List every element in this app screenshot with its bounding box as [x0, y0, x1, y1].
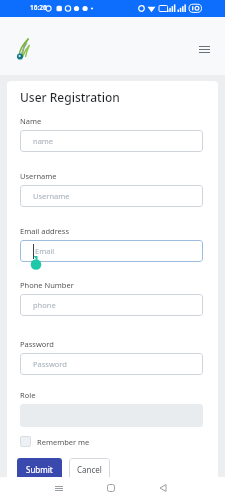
- staticText: Remember me: [37, 437, 90, 447]
- staticText: Password: [20, 339, 54, 349]
- button[interactable]: Cancel: [69, 458, 110, 477]
- staticText: Name: [20, 116, 42, 126]
- button[interactable]: [155, 480, 171, 496]
- staticText: Phone Number: [20, 280, 74, 290]
- staticText: Email address: [20, 226, 70, 236]
- button[interactable]: [15, 37, 33, 61]
- button[interactable]: phone: [20, 294, 203, 316]
- staticText: name: [33, 136, 54, 146]
- button[interactable]: Password: [20, 353, 203, 375]
- staticText: Submit: [26, 464, 53, 475]
- staticText: 16:26: [30, 3, 47, 12]
- staticText: Email: [35, 246, 55, 256]
- staticText: phone: [33, 300, 56, 310]
- button[interactable]: [103, 480, 119, 496]
- button[interactable]: Username: [20, 185, 203, 207]
- staticText: Cancel: [77, 464, 102, 475]
- staticText: Password: [33, 359, 67, 369]
- button[interactable]: Remember me: [20, 436, 90, 447]
- staticText: Username: [33, 191, 70, 201]
- button[interactable]: Submit: [17, 458, 62, 477]
- staticText: Role: [20, 390, 36, 400]
- button[interactable]: [50, 480, 68, 496]
- button[interactable]: name: [20, 130, 203, 152]
- staticText: Username: [20, 171, 57, 181]
- staticText: User Registration: [20, 89, 120, 105]
- button[interactable]: Email: [20, 240, 203, 262]
- button[interactable]: [194, 42, 214, 56]
